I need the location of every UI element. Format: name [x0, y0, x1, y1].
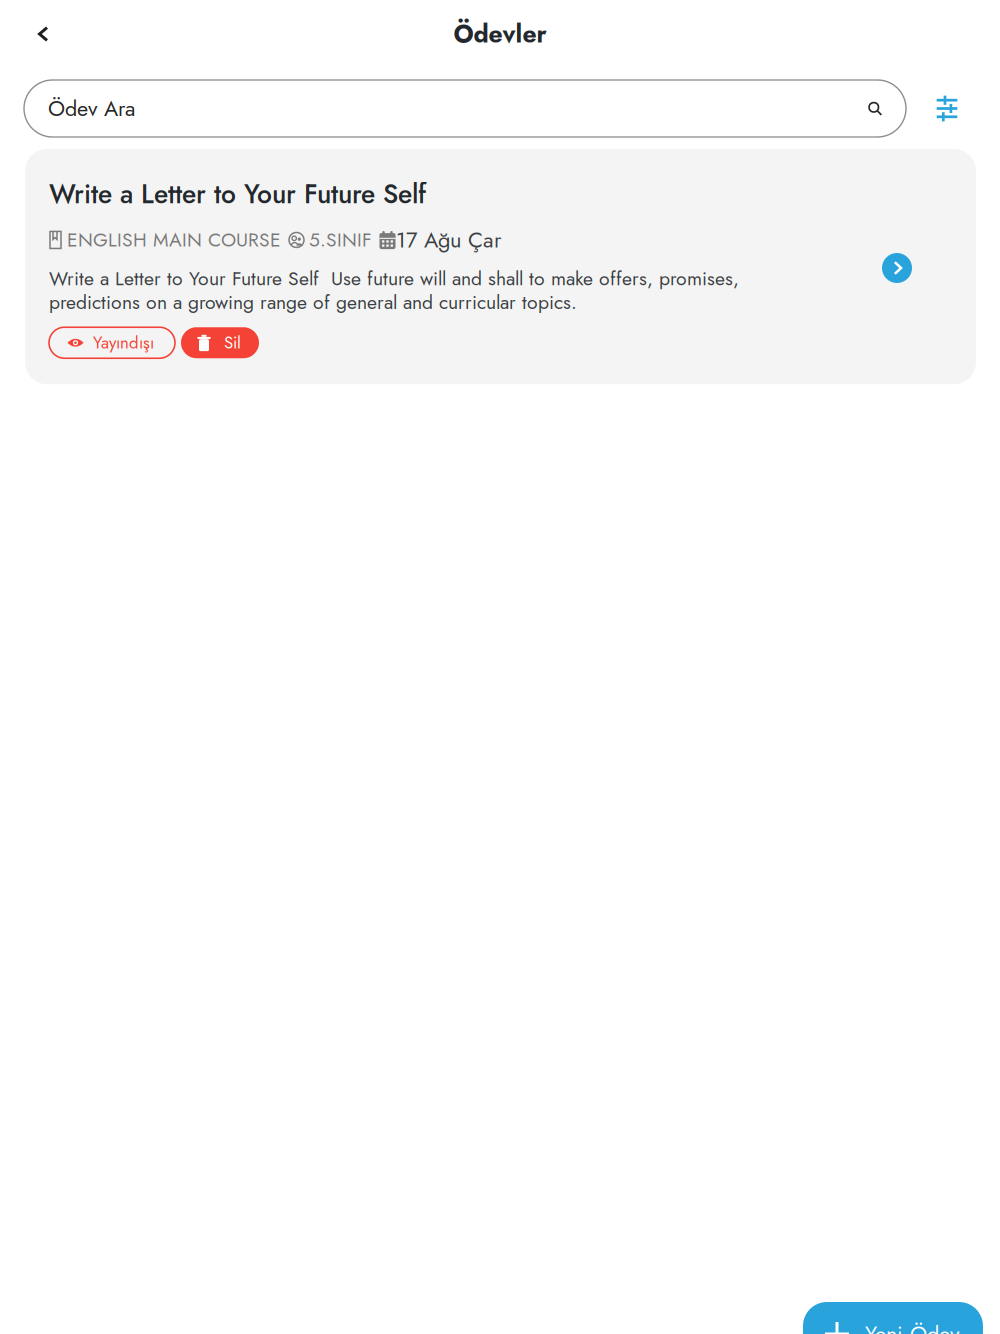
staticText: Ödevler [453, 16, 546, 52]
staticText: Sil [224, 331, 241, 355]
staticText: ENGLISH MAIN COURSE [67, 226, 281, 254]
button[interactable]: Open assignment [882, 253, 912, 283]
button[interactable]: Sil [181, 327, 259, 358]
button[interactable]: Yayındışı [49, 327, 175, 358]
staticText: Write a Letter to Your Future Self [49, 175, 426, 213]
staticText: Yeni Ödev [865, 1318, 960, 1334]
button[interactable]: Back [21, 12, 65, 56]
button[interactable]: Filter [919, 80, 975, 137]
button[interactable]: Yeni Ödev [803, 1302, 983, 1334]
staticText: Write a Letter to Your Future Self Use f… [49, 267, 739, 314]
staticText: Yayındışı [93, 331, 154, 355]
staticText: Ödev Ara [48, 93, 135, 124]
staticText: 5.SINIF [309, 226, 372, 254]
staticText: 17 Ağu Çar [396, 224, 502, 256]
